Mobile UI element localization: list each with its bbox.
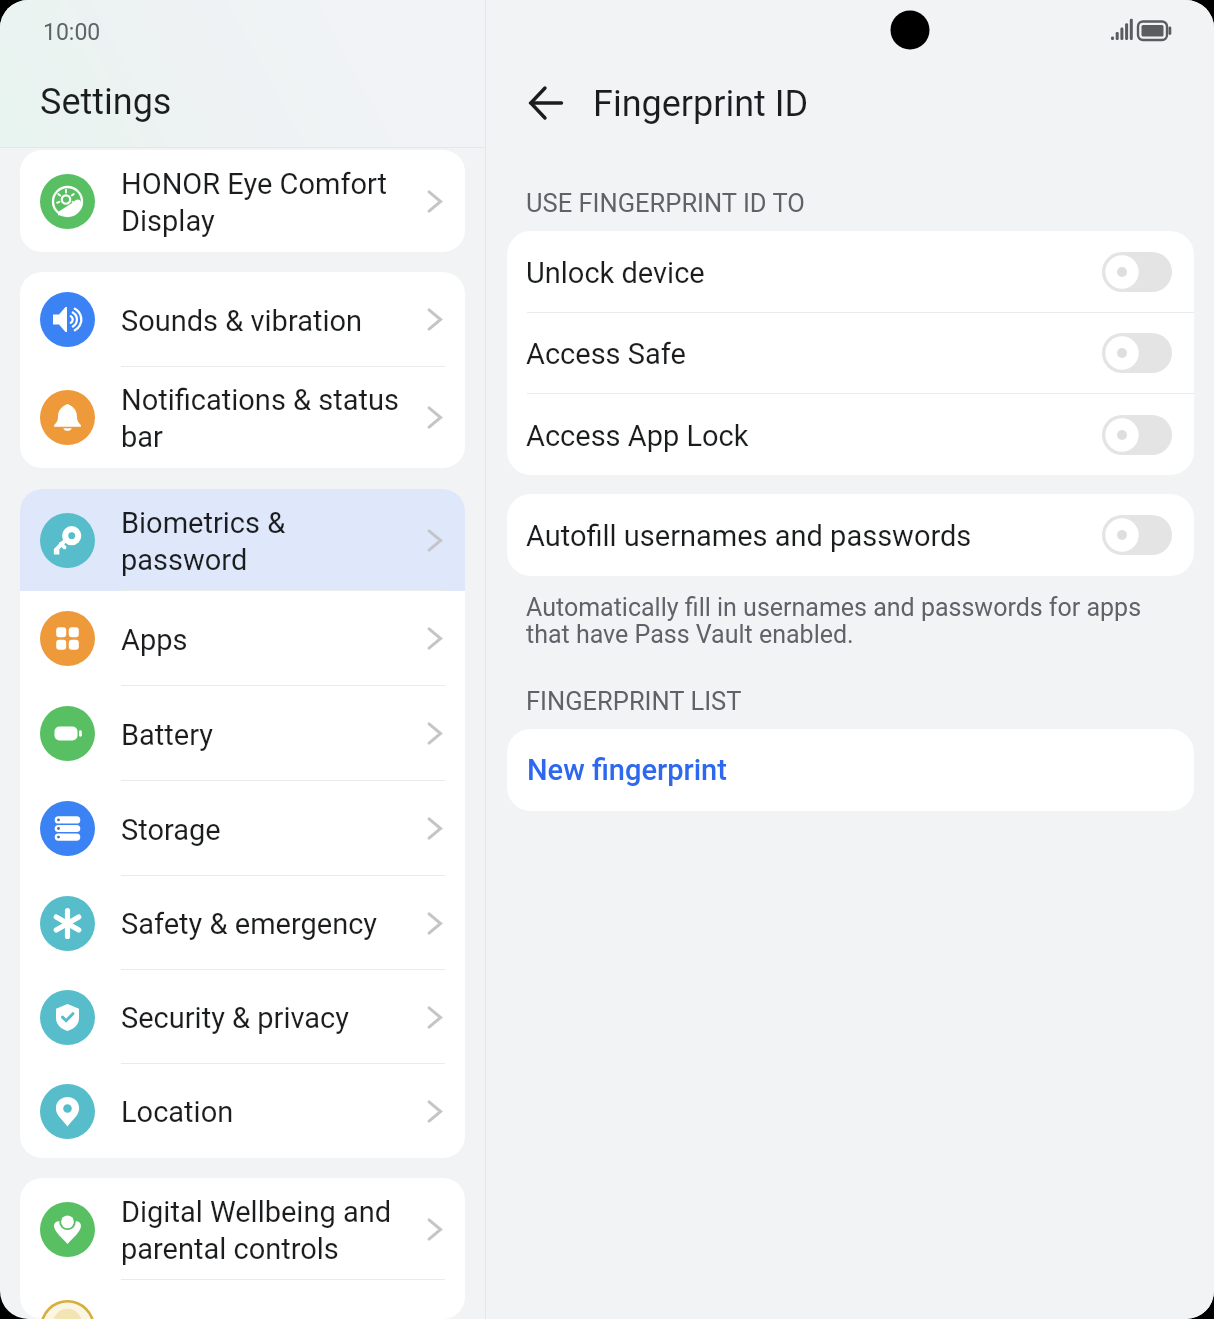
other: Toggle Autofill usernames and passwords — [1102, 515, 1172, 555]
staticText: USE FINGERPRINT ID TO — [526, 188, 805, 218]
staticText: Unlock device — [526, 256, 705, 290]
button[interactable]: Security & privacy — [20, 970, 465, 1064]
button[interactable]: Unlock device — [507, 231, 1194, 312]
button[interactable]: Safety & emergency — [20, 876, 465, 970]
staticText: Autofill usernames and passwords — [526, 519, 972, 553]
staticText: Settings — [40, 81, 172, 123]
button[interactable]: New fingerprint — [507, 729, 1194, 811]
staticText: Digital Wellbeing and parental controls — [121, 1195, 392, 1266]
staticText: Notifications & status bar — [121, 383, 399, 454]
staticText: FINGERPRINT LIST — [526, 686, 742, 716]
staticText: New fingerprint — [527, 753, 727, 787]
button[interactable]: Sounds & vibration — [20, 272, 465, 367]
button[interactable]: Apps — [20, 591, 465, 686]
staticText: Battery — [121, 718, 213, 752]
button[interactable]: Access Safe — [507, 313, 1194, 393]
staticText: Fingerprint ID — [593, 83, 809, 125]
other: Toggle Access App Lock — [1102, 415, 1172, 455]
staticText: Safety & emergency — [121, 907, 378, 941]
other: Toggle Unlock device — [1102, 252, 1172, 292]
staticText: Storage — [121, 813, 221, 847]
button[interactable]: HONOR Eye Comfort Display — [20, 150, 465, 252]
other: Toggle Access Safe — [1102, 333, 1172, 373]
staticText: Sounds & vibration — [121, 304, 363, 338]
staticText: Apps — [121, 623, 188, 657]
button[interactable]: Battery — [20, 686, 465, 781]
button[interactable]: Autofill usernames and passwords — [507, 494, 1194, 576]
staticText: Automatically fill in usernames and pass… — [526, 593, 1142, 649]
staticText: Security & privacy — [121, 1001, 349, 1035]
staticText: Access Safe — [526, 337, 686, 371]
staticText: 10:00 — [43, 19, 101, 46]
staticText: Location — [121, 1095, 234, 1129]
staticText: Access App Lock — [526, 419, 749, 453]
button[interactable]: Storage — [20, 781, 465, 876]
staticText: HONOR Eye Comfort Display — [121, 167, 388, 238]
staticText: Biometrics & password — [121, 506, 286, 577]
button[interactable]: Access App Lock — [507, 394, 1194, 475]
button[interactable]: Tips — [20, 1280, 465, 1319]
button[interactable]: Biometrics & password — [20, 489, 465, 591]
button[interactable]: Location — [20, 1064, 465, 1158]
button[interactable]: Notifications & status bar — [20, 367, 465, 468]
button[interactable]: Digital Wellbeing and parental controls — [20, 1178, 465, 1280]
button[interactable]: Back — [518, 75, 574, 131]
